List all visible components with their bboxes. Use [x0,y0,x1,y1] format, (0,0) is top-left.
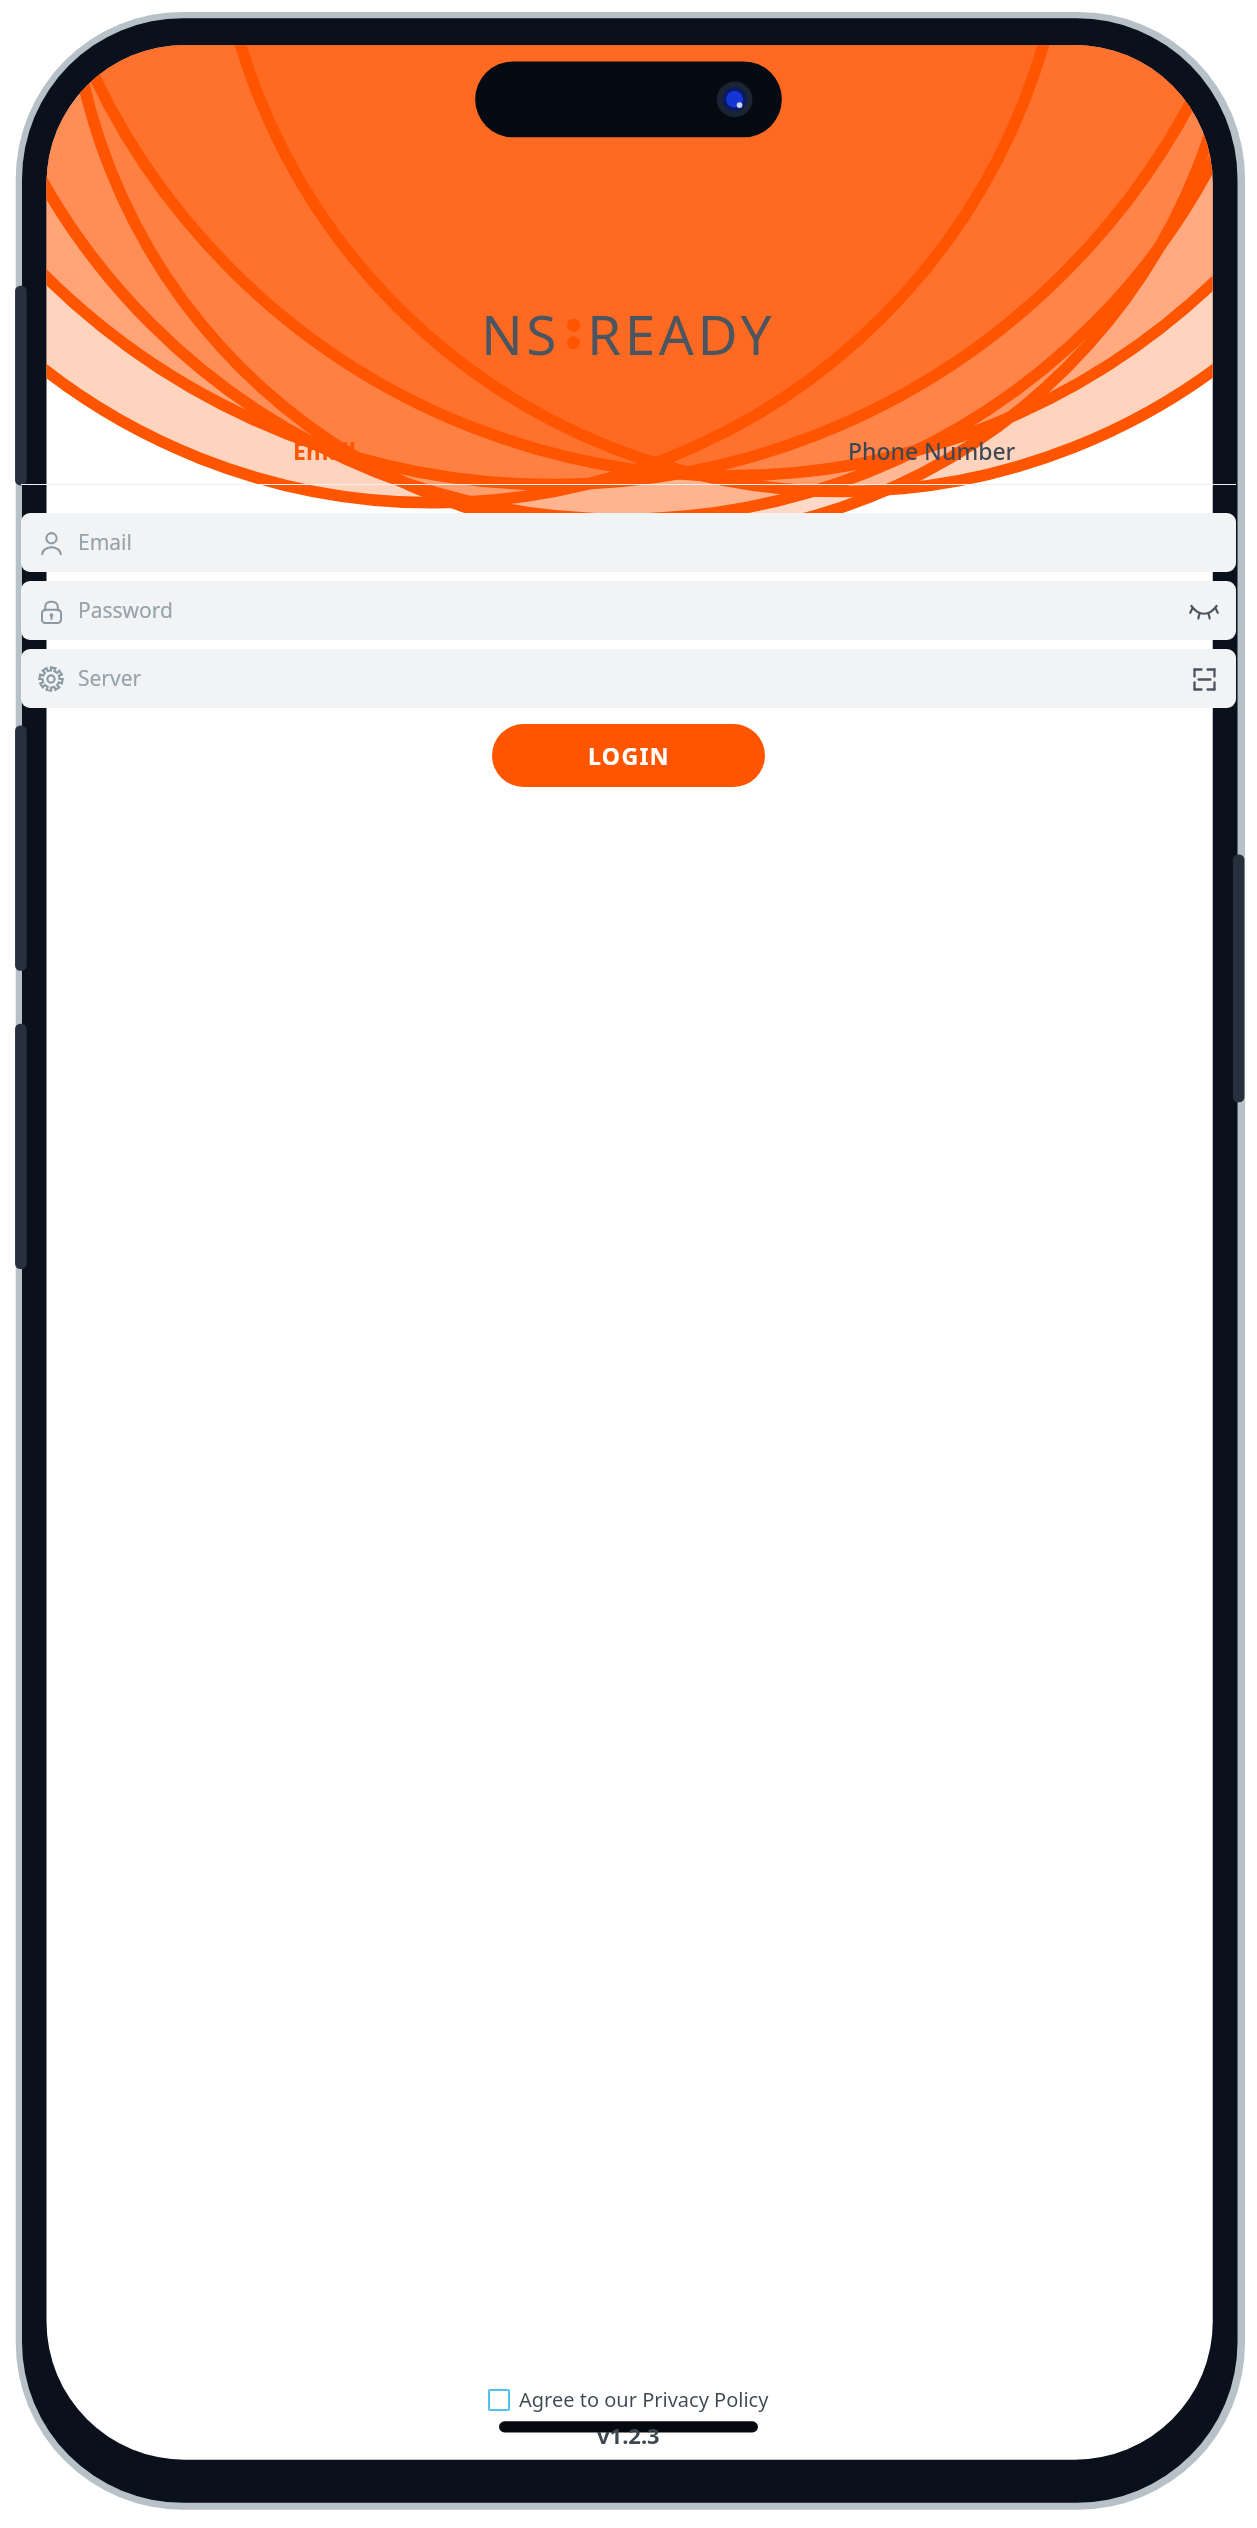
staticText: LOGIN [588,740,670,771]
button[interactable]: Password [21,581,1236,640]
staticText: v1.2.3 [597,2420,660,2450]
staticText: READY [587,296,776,371]
button[interactable]: Server [21,649,1236,708]
button[interactable]: LOGIN [492,724,765,787]
staticText: Email [293,435,356,466]
staticText: Password [78,596,173,625]
staticText: Agree to our Privacy Policy [519,2386,769,2413]
staticText: Email [78,528,132,557]
button[interactable]: Phone Number [628,426,1236,475]
button[interactable]: Email [21,426,628,475]
staticText: NS [481,296,560,371]
staticText: Phone Number [848,435,1016,466]
button[interactable]: Show password [1188,595,1220,627]
button[interactable]: Email [21,513,1236,572]
staticText: Server [78,664,142,693]
button[interactable]: Scan QR code [1188,663,1220,695]
button[interactable]: Agree to our Privacy Policy [480,2382,777,2417]
